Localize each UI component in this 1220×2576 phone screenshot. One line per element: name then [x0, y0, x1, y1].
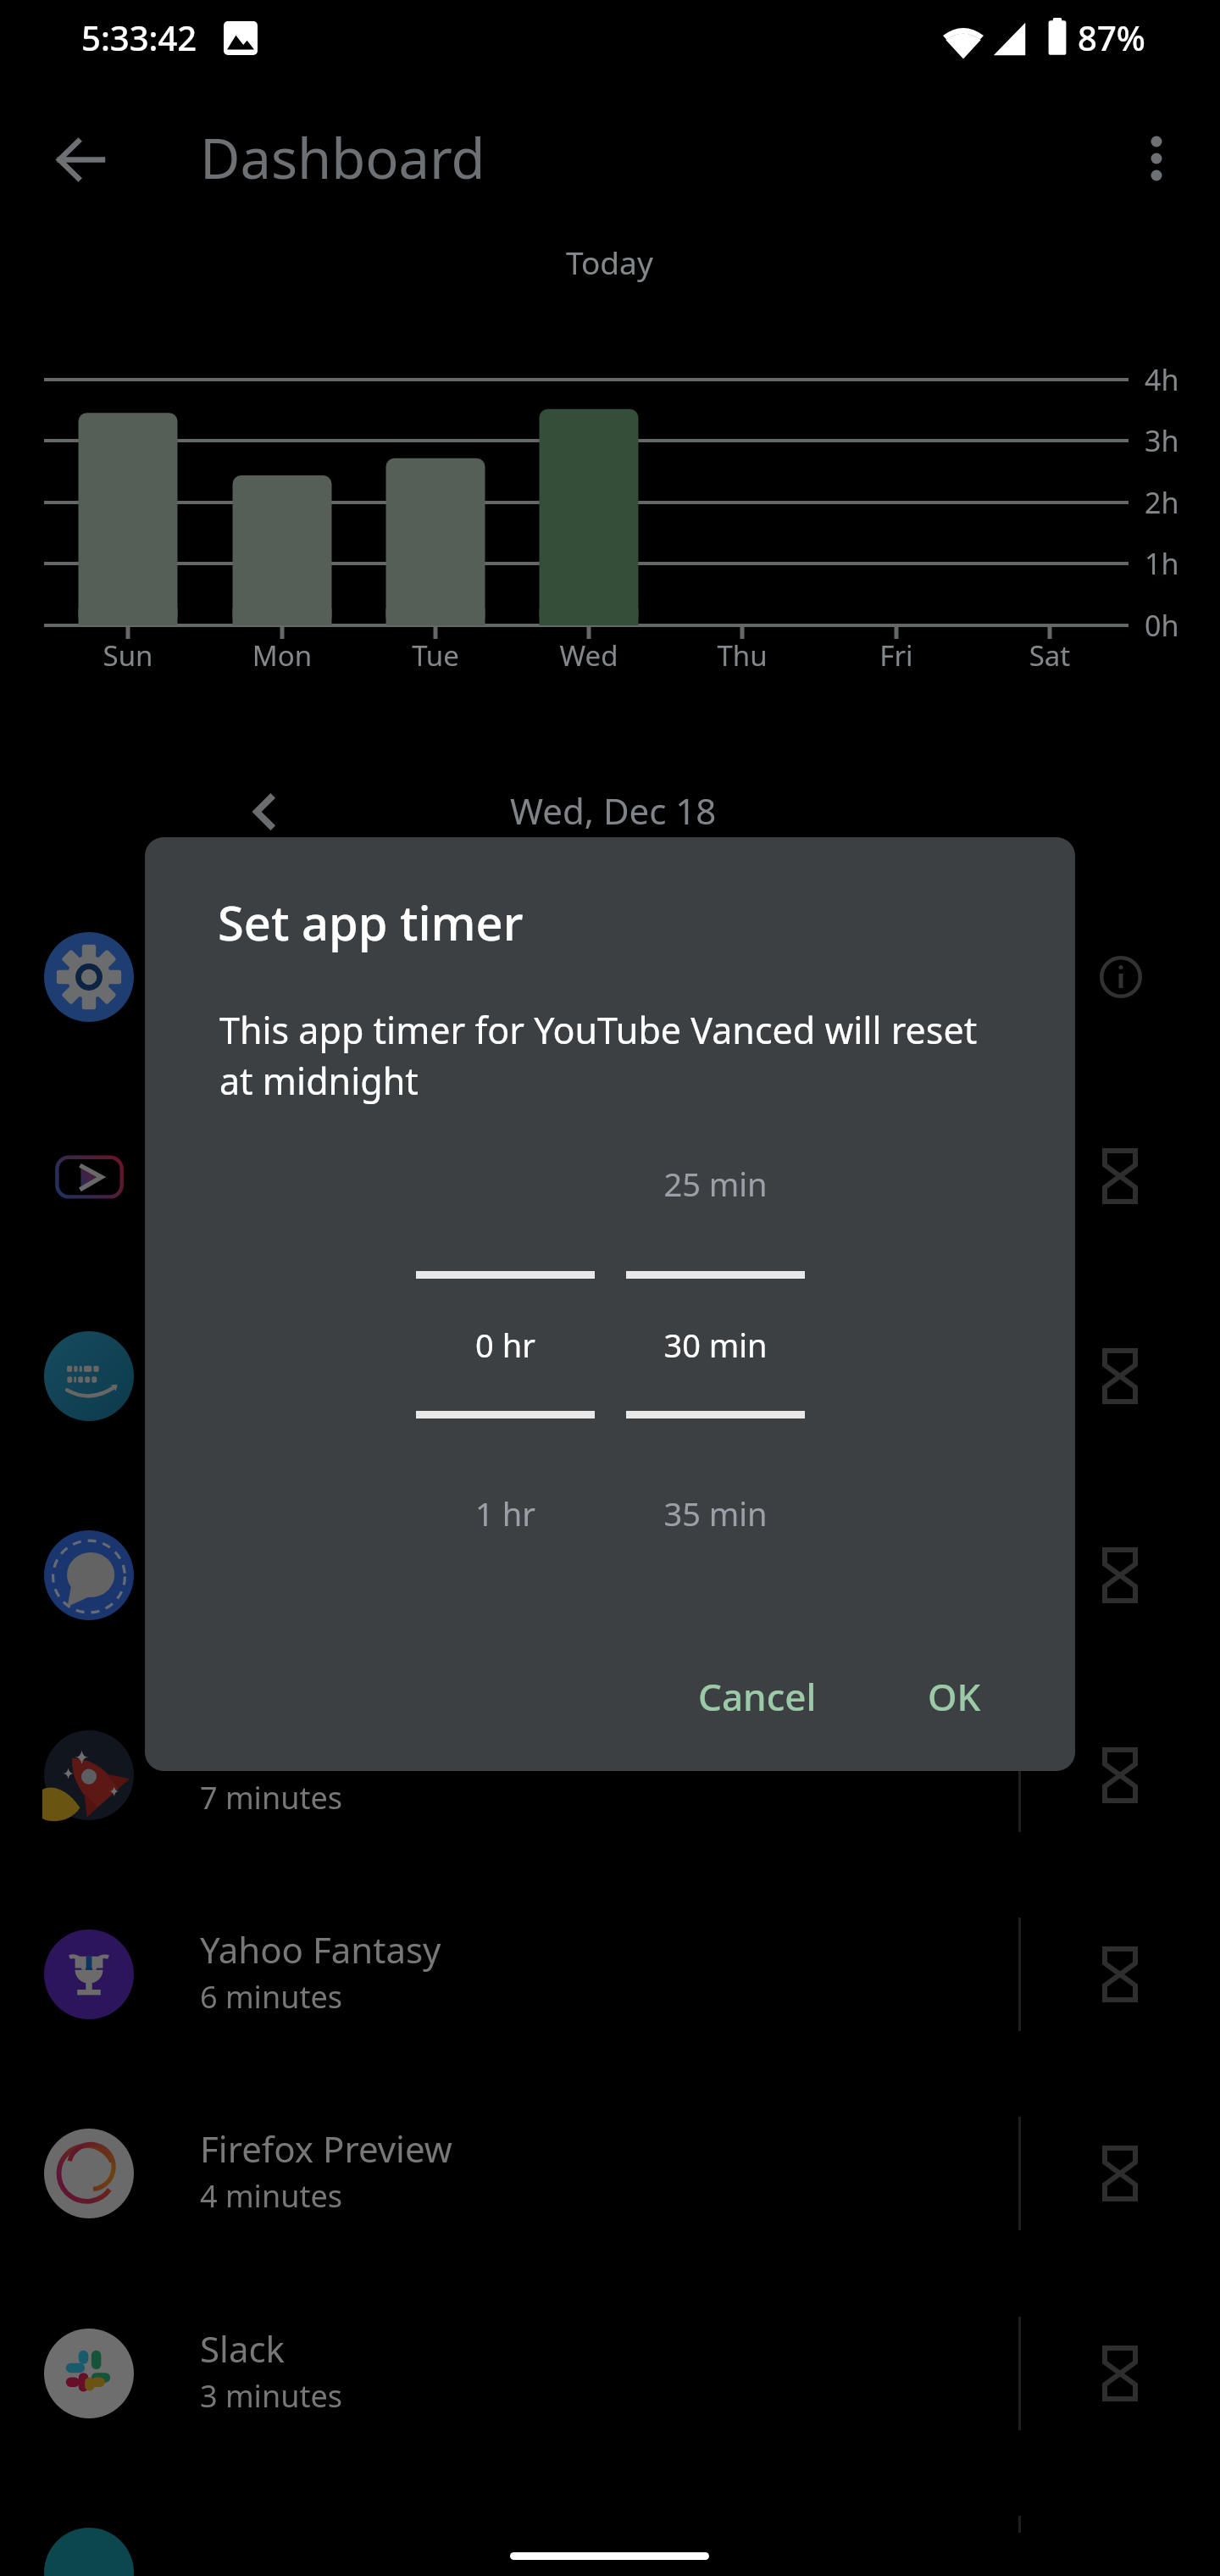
staticText: Mon — [214, 636, 350, 675]
staticText: Thu — [674, 636, 810, 675]
staticText: 35 min — [663, 1491, 768, 1535]
button[interactable]: Set app timer — [1061, 1317, 1179, 1435]
staticText: Slack — [200, 2324, 286, 2373]
staticText: 1 hr — [475, 1491, 535, 1535]
staticText: 48 minutes — [200, 979, 360, 1020]
staticText: Fri — [829, 636, 964, 675]
staticText: Set app timer — [218, 890, 524, 954]
button[interactable]: Set app timer — [1061, 1716, 1179, 1835]
staticText: Wed, Dec 18 — [510, 786, 717, 835]
button[interactable]: Set app timer — [1061, 1516, 1179, 1635]
staticText: Tue — [368, 636, 503, 675]
staticText: Settings — [200, 928, 335, 976]
button[interactable]: Slack — [0, 2276, 1220, 2470]
staticText: Firefox Preview — [200, 2124, 452, 2173]
button[interactable]: Settings — [0, 880, 1220, 1074]
staticText: Today — [566, 241, 653, 283]
button[interactable]: Set app timer — [1061, 2314, 1179, 2433]
staticText: 7 minutes — [200, 1777, 342, 1818]
button[interactable]: Firefox Preview — [0, 2076, 1220, 2270]
button[interactable]: More options — [1110, 112, 1203, 205]
staticText: 3h — [1145, 421, 1179, 460]
button[interactable]: Set app timer — [1061, 1117, 1179, 1235]
button[interactable]: Cancel — [678, 1657, 837, 1735]
staticText: 87% — [1078, 14, 1145, 60]
button[interactable] — [0, 2475, 1220, 2576]
button[interactable]: Prime Video — [0, 1279, 1220, 1473]
staticText: 4h — [1145, 360, 1179, 399]
button[interactable]: Signal — [0, 1478, 1220, 1672]
staticText: 5:33:42 — [81, 14, 197, 60]
button[interactable]: Set app timer — [1061, 1915, 1179, 2034]
button[interactable]: Set app timer — [1061, 2114, 1179, 2233]
staticText: 0h — [1145, 606, 1179, 645]
staticText: Wed — [521, 636, 657, 675]
staticText: Sun — [60, 636, 196, 675]
button[interactable]: App info — [1062, 918, 1180, 1036]
staticText: 0 hr — [475, 1323, 535, 1367]
staticText: 3 minutes — [200, 2375, 342, 2417]
staticText: Cancel — [698, 1671, 817, 1722]
staticText: Dashboard — [200, 120, 485, 196]
staticText: 1h — [1145, 544, 1179, 583]
button[interactable]: OK — [907, 1657, 1001, 1735]
staticText: 4 minutes — [200, 2175, 342, 2217]
staticText: 6 minutes — [200, 1976, 342, 2018]
button[interactable]: Yahoo Fantasy — [0, 1877, 1220, 2071]
staticText: Yahoo Fantasy — [200, 1925, 441, 1974]
staticText: Sat — [982, 636, 1117, 675]
staticText: OK — [928, 1671, 981, 1722]
button[interactable]: Previous day — [222, 769, 307, 854]
staticText: This app timer for YouTube Vanced will r… — [219, 1005, 982, 1106]
button[interactable]: YouTube Vanced — [0, 1079, 1220, 1273]
button[interactable]: Rocket — [0, 1678, 1220, 1872]
staticText: 30 min — [663, 1323, 768, 1367]
button[interactable]: Back — [32, 112, 127, 207]
staticText: 25 min — [663, 1162, 768, 1206]
staticText: Rocket — [200, 1726, 313, 1774]
staticText: 2h — [1145, 483, 1179, 522]
